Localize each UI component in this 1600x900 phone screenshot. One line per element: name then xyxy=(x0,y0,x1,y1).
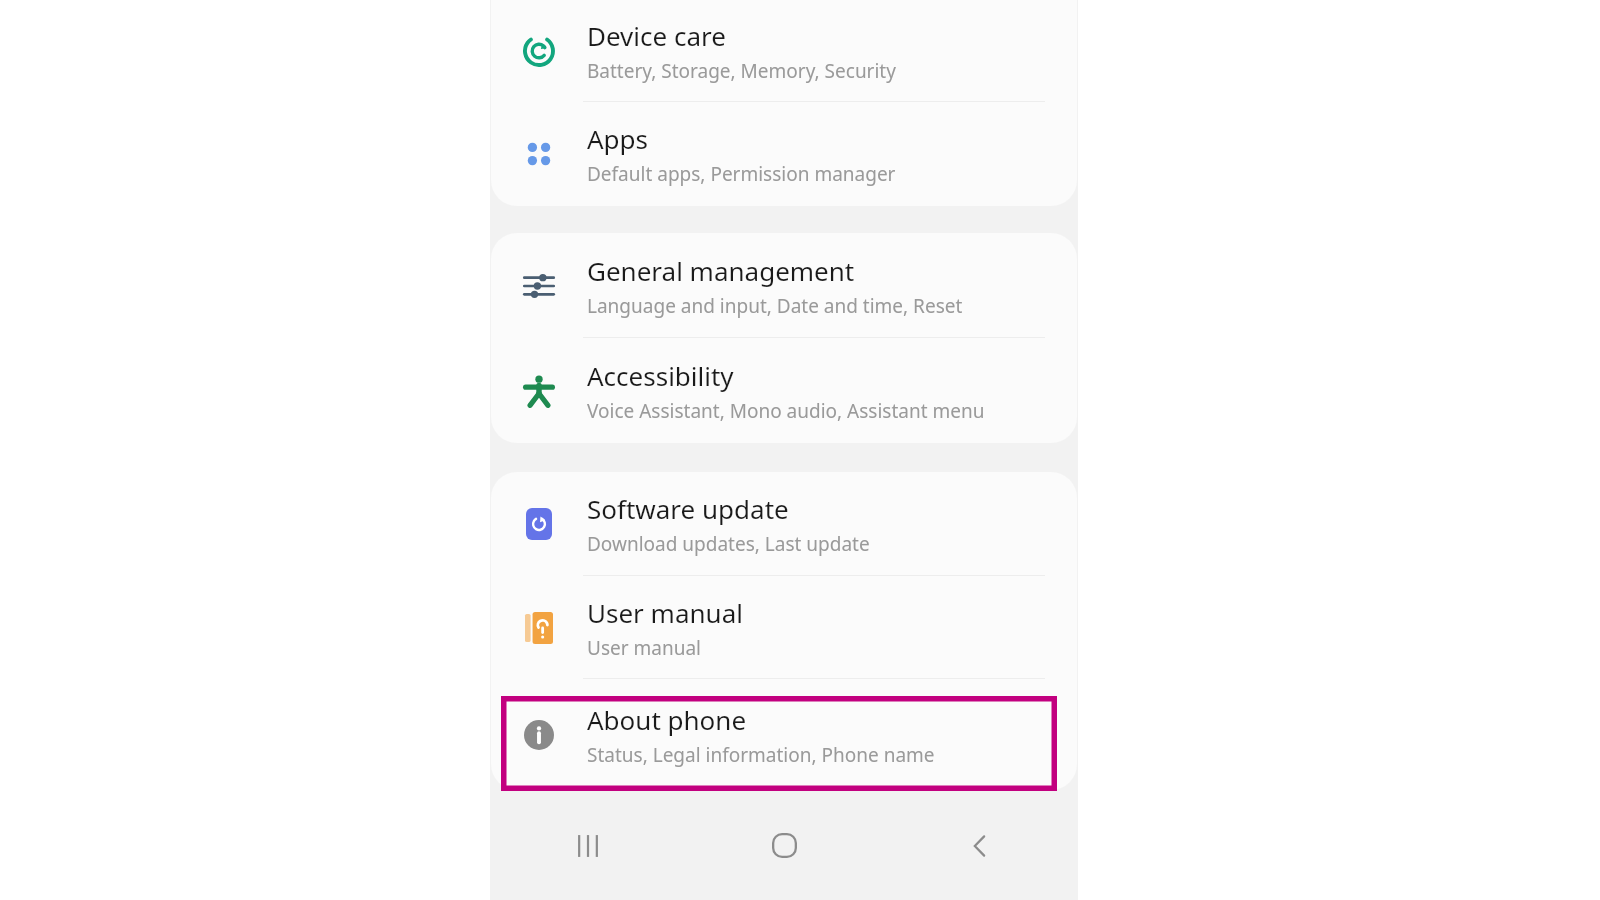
staticText: Software update xyxy=(587,491,789,526)
staticText: General management xyxy=(587,253,855,288)
button[interactable]: Software update xyxy=(491,472,1077,576)
staticText: Status, Legal information, Phone name xyxy=(587,742,935,768)
staticText: Language and input, Date and time, Reset xyxy=(587,293,963,319)
button[interactable]: Device care xyxy=(491,0,1077,102)
button[interactable]: Accessibility xyxy=(491,338,1077,443)
button[interactable]: Recent apps xyxy=(490,791,686,900)
staticText: Accessibility xyxy=(587,358,734,393)
button[interactable]: Home xyxy=(686,791,882,900)
button[interactable]: User manual xyxy=(491,576,1077,679)
staticText: Default apps, Permission manager xyxy=(587,161,896,187)
staticText: User manual xyxy=(587,635,701,661)
staticText: Download updates, Last update xyxy=(587,531,870,557)
staticText: Device care xyxy=(587,18,726,53)
button[interactable]: Back xyxy=(882,791,1078,900)
staticText: User manual xyxy=(587,595,743,630)
button[interactable]: Apps xyxy=(491,102,1077,206)
staticText: Voice Assistant, Mono audio, Assistant m… xyxy=(587,398,985,424)
staticText: About phone xyxy=(587,702,747,737)
button[interactable]: General management xyxy=(491,233,1077,338)
staticText: Battery, Storage, Memory, Security xyxy=(587,58,896,84)
button[interactable]: About phone xyxy=(491,679,1077,790)
staticText: Apps xyxy=(587,121,649,156)
